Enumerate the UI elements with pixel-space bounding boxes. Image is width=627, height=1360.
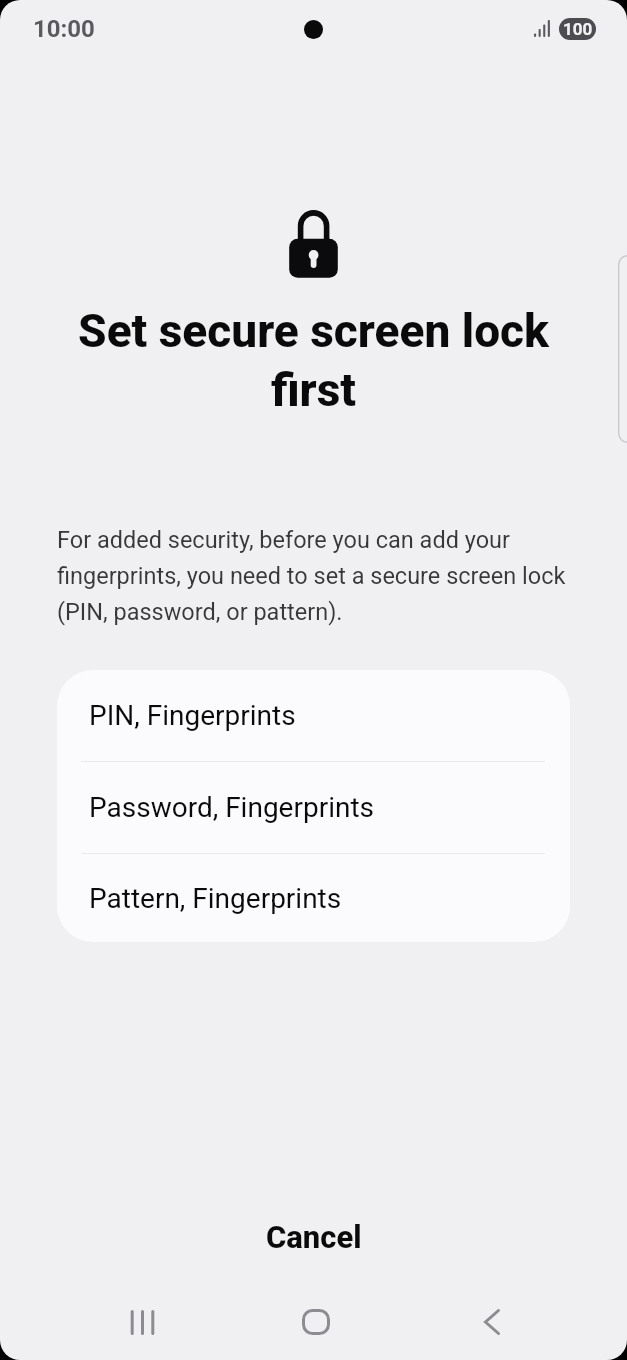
staticText: PIN, Fingerprints: [89, 699, 296, 732]
staticText: For added security, before you can add y…: [57, 526, 590, 625]
button[interactable]: Password, Fingerprints: [57, 762, 570, 853]
staticText: Password, Fingerprints: [89, 791, 375, 824]
staticText: 10:00: [33, 15, 95, 43]
staticText: 100: [563, 19, 593, 39]
staticText: Pattern, Fingerprints: [89, 882, 342, 915]
button[interactable]: Back: [468, 1298, 516, 1346]
button[interactable]: Cancel: [0, 1206, 627, 1268]
staticText: Set secure screen lock first: [42, 304, 585, 417]
button[interactable]: Home: [292, 1298, 340, 1346]
button[interactable]: Pattern, Fingerprints: [57, 854, 570, 942]
button[interactable]: Recent apps: [117, 1298, 165, 1346]
staticText: Cancel: [266, 1219, 362, 1255]
button[interactable]: PIN, Fingerprints: [57, 670, 570, 761]
